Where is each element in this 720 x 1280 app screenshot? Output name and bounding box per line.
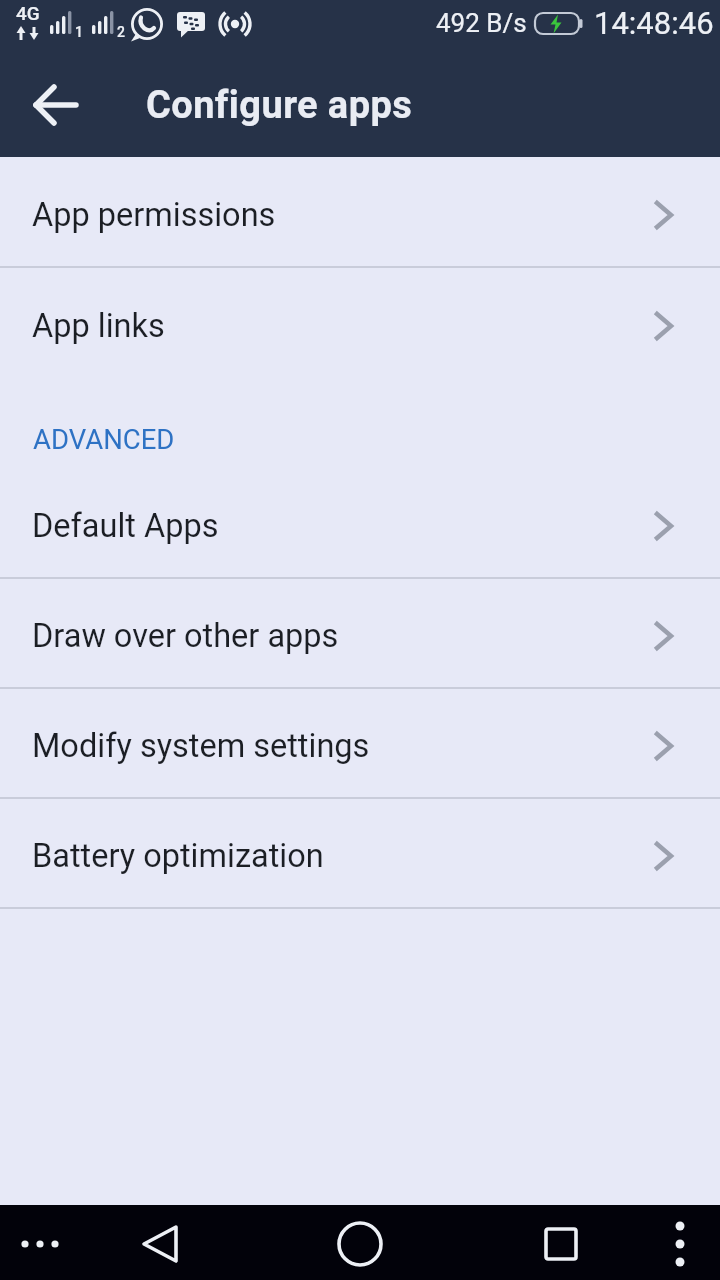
button[interactable]: Default Apps <box>0 469 720 577</box>
button[interactable]: Battery optimization <box>0 799 720 907</box>
staticText: Draw over other apps <box>32 617 339 655</box>
staticText: ADVANCED <box>33 423 175 455</box>
button[interactable] <box>0 1205 144 1280</box>
staticText: 2 <box>117 24 125 40</box>
button[interactable] <box>144 1205 288 1280</box>
button[interactable]: Modify system settings <box>0 689 720 797</box>
button[interactable] <box>20 69 92 141</box>
staticText: Modify system settings <box>32 727 370 765</box>
button[interactable]: Draw over other apps <box>0 579 720 687</box>
staticText: Default Apps <box>32 507 219 545</box>
button[interactable] <box>432 1205 576 1280</box>
staticText: 492 B/s <box>436 8 527 38</box>
staticText: App links <box>32 307 165 345</box>
staticText: Battery optimization <box>32 837 324 875</box>
button[interactable]: App links <box>0 268 720 377</box>
staticText: 4G <box>16 2 40 24</box>
button[interactable] <box>576 1205 720 1280</box>
button[interactable] <box>288 1205 432 1280</box>
staticText: 1 <box>75 24 83 40</box>
staticText: App permissions <box>32 196 276 234</box>
staticText: Configure apps <box>146 83 413 128</box>
button[interactable]: App permissions <box>0 157 720 266</box>
staticText: 14:48:46 <box>594 5 714 41</box>
